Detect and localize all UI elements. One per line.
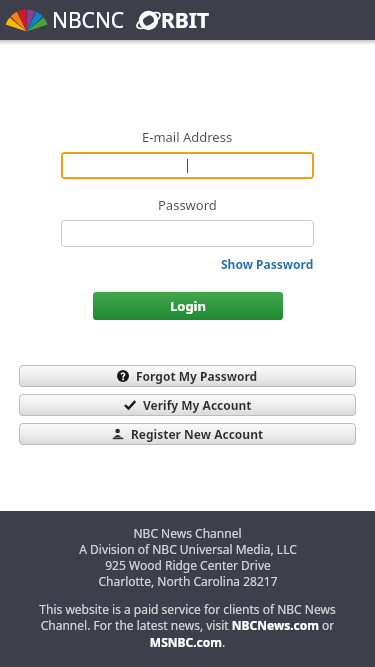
staticText: NBCNC	[52, 6, 125, 35]
staticText: Forgot My Password	[136, 368, 258, 384]
button[interactable]: Help	[19, 365, 356, 387]
other: Verify	[124, 399, 136, 411]
button[interactable]: Register	[19, 423, 356, 445]
staticText: E-mail Address	[142, 128, 233, 146]
staticText: Charlotte, North Carolina 28217	[98, 573, 278, 589]
staticText: 925 Wood Ridge Center Drive	[105, 557, 271, 573]
staticText: Register New Account	[131, 426, 264, 442]
staticText: A Division of NBC Universal Media, LLC	[79, 541, 297, 557]
staticText: This website is a paid service for clien…	[20, 601, 355, 651]
staticText: Verify My Account	[143, 397, 252, 413]
staticText: Password	[158, 196, 217, 214]
button[interactable]	[61, 152, 314, 179]
staticText: Login	[170, 297, 206, 315]
other: Register	[112, 428, 124, 440]
button[interactable]	[61, 220, 314, 247]
button[interactable]: Show Password	[221, 256, 314, 272]
staticText: Show Password	[221, 256, 314, 272]
button[interactable]: Login	[93, 292, 283, 320]
staticText: RBIT	[161, 6, 210, 35]
button[interactable]: Verify	[19, 394, 356, 416]
staticText: NBC News Channel	[133, 525, 242, 541]
other: Help	[117, 370, 129, 382]
